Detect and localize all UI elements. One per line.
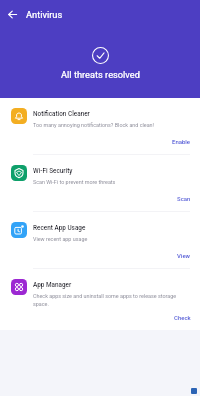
button[interactable]: Check bbox=[174, 314, 191, 321]
staticText: Scan Wi-Fi to prevent more threats bbox=[33, 179, 116, 185]
staticText: All threats resolved bbox=[61, 69, 140, 80]
staticText: Check apps size and uninstall some apps … bbox=[33, 293, 177, 308]
button[interactable]: Enable bbox=[172, 138, 191, 145]
staticText: View recent app usage bbox=[33, 236, 88, 242]
button[interactable]: Wi-Fi Security bbox=[0, 155, 200, 211]
button[interactable]: Scan bbox=[177, 195, 191, 202]
button[interactable]: Back bbox=[2, 4, 22, 24]
button[interactable]: View bbox=[177, 252, 191, 259]
staticText: Antivirus bbox=[26, 9, 63, 20]
staticText: Recent App Usage bbox=[33, 224, 86, 232]
button[interactable]: Recent App Usage bbox=[0, 212, 200, 268]
button[interactable]: App Manager bbox=[0, 269, 200, 330]
staticText: Notification Cleaner bbox=[33, 110, 90, 118]
staticText: Too many annoying notifications? Block a… bbox=[33, 122, 154, 128]
staticText: App Manager bbox=[33, 281, 72, 289]
staticText: Wi-Fi Security bbox=[33, 167, 73, 175]
button[interactable]: Notification Cleaner bbox=[0, 98, 200, 154]
